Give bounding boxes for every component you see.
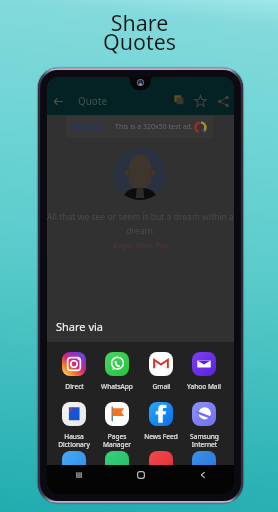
staticText: Gmail [152, 382, 171, 391]
button[interactable]: Samsung Internet [182, 402, 226, 449]
staticText: Direct [65, 382, 84, 391]
button[interactable]: Copy [171, 92, 189, 110]
button[interactable]: Share [214, 92, 232, 110]
staticText: Share via [56, 319, 103, 334]
staticText: WhatsApp [101, 382, 133, 391]
button[interactable] [95, 451, 139, 481]
staticText: All that we see or seem is but a dream w… [47, 211, 234, 236]
button[interactable]: News Feed [139, 402, 183, 441]
button[interactable]: Back [172, 465, 234, 484]
staticText: This is a 320x50 test ad. [115, 122, 193, 132]
staticText: Quote [78, 95, 108, 108]
button[interactable]: Yahoo Mail [182, 352, 226, 391]
button[interactable]: Favourite [191, 92, 209, 110]
button[interactable]: WhatsApp [95, 352, 139, 391]
staticText: Edgar Allan Poe [47, 240, 234, 250]
staticText: News Feed [144, 432, 178, 441]
staticText: Nice job! [72, 122, 103, 132]
button[interactable] [139, 451, 183, 481]
button[interactable]: Hausa Dictionary [52, 402, 96, 449]
button[interactable] [182, 451, 226, 481]
staticText: Pages Manager [103, 432, 131, 449]
staticText: Samsung Internet [190, 432, 219, 449]
staticText: Share Quotes [103, 8, 176, 56]
button[interactable] [52, 451, 96, 481]
button[interactable]: Pages Manager [95, 402, 139, 449]
button[interactable]: Recents [47, 465, 110, 484]
button[interactable]: Back [49, 92, 67, 110]
button[interactable]: Gmail [139, 352, 183, 391]
button[interactable]: Home [110, 465, 172, 484]
button[interactable]: Direct [52, 352, 96, 391]
staticText: Yahoo Mail [187, 382, 221, 391]
staticText: Hausa Dictionary [58, 432, 90, 449]
